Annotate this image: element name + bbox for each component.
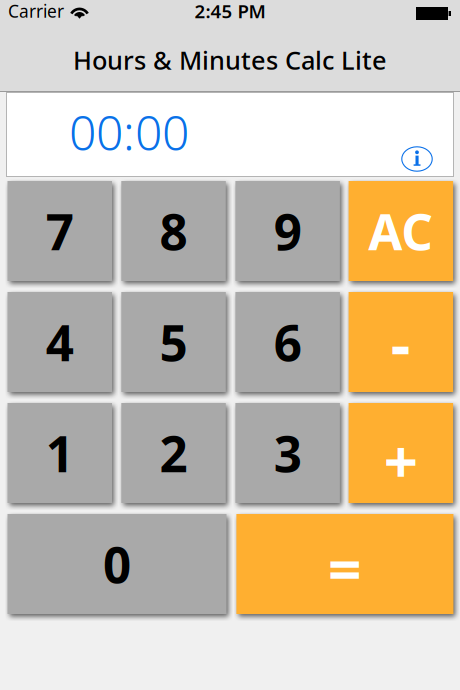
staticText: 9: [274, 198, 302, 264]
staticText: Hours & Minutes Calc Lite: [73, 43, 387, 77]
staticText: =: [328, 529, 362, 607]
button[interactable]: 3: [235, 403, 340, 503]
staticText: 5: [160, 309, 188, 375]
button[interactable]: 0: [7, 514, 226, 614]
button[interactable]: 8: [121, 181, 226, 281]
staticText: 2: [160, 420, 188, 486]
button[interactable]: AC: [349, 181, 453, 281]
staticText: 8: [160, 198, 188, 264]
button[interactable]: 6: [235, 292, 340, 392]
staticText: 3: [274, 420, 302, 486]
staticText: -: [391, 303, 411, 384]
staticText: 6: [274, 309, 302, 375]
staticText: 00:00: [69, 100, 189, 164]
button[interactable]: =: [236, 514, 453, 614]
button[interactable]: +: [349, 403, 453, 503]
staticText: 7: [46, 198, 74, 264]
button[interactable]: Info: [401, 144, 433, 174]
button[interactable]: 5: [121, 292, 226, 392]
staticText: 4: [46, 309, 74, 375]
staticText: 1: [46, 420, 74, 486]
button[interactable]: 7: [7, 181, 112, 281]
staticText: +: [384, 421, 418, 500]
staticText: AC: [368, 198, 433, 264]
button[interactable]: 2: [121, 403, 226, 503]
button[interactable]: 4: [7, 292, 112, 392]
button[interactable]: 1: [7, 403, 112, 503]
staticText: Carrier: [8, 0, 64, 22]
staticText: 0: [103, 531, 131, 597]
staticText: 2:45 PM: [194, 0, 265, 23]
button[interactable]: 9: [235, 181, 340, 281]
button[interactable]: -: [349, 292, 453, 392]
